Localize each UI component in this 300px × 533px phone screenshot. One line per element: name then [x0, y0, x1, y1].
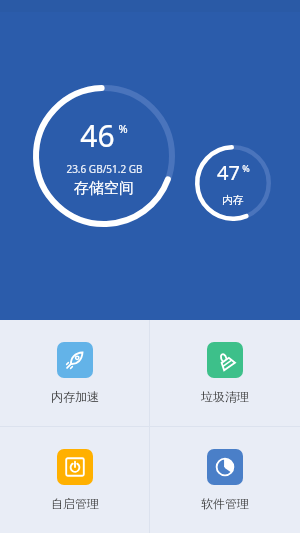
staticText: %	[242, 162, 250, 174]
button[interactable]: 软件管理	[150, 427, 300, 533]
staticText: 23.6 GB/51.2 GB	[66, 162, 143, 176]
staticText: %	[118, 121, 128, 136]
staticText: 47	[217, 159, 240, 186]
staticText: 软件管理	[201, 496, 249, 511]
staticText: 垃圾清理	[201, 389, 249, 404]
button[interactable]: 自启管理	[0, 427, 149, 533]
staticText: 内存加速	[51, 389, 99, 404]
staticText: 46	[80, 115, 115, 156]
staticText: 内存	[222, 193, 244, 207]
staticText: 存储空间	[74, 179, 134, 198]
button[interactable]: 垃圾清理	[150, 320, 300, 426]
staticText: 自启管理	[51, 496, 99, 511]
button[interactable]: 内存加速	[0, 320, 149, 426]
